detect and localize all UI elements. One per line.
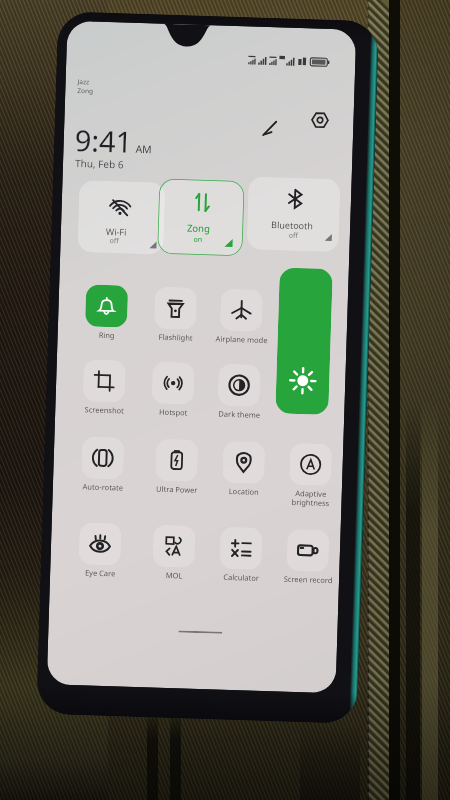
staticText: Eye Care [68, 567, 132, 579]
staticText: Zong [77, 86, 93, 95]
staticText: Hotspot [141, 406, 205, 418]
staticText: Dark theme [207, 408, 271, 420]
button[interactable]: Ultra Power [144, 438, 210, 506]
button[interactable]: MOL [142, 524, 208, 592]
button[interactable]: Airplane mode [209, 288, 275, 356]
staticText: 9:41 [74, 120, 133, 161]
button[interactable]: Auto-rotate [70, 436, 136, 504]
staticText: Location [212, 485, 276, 497]
button[interactable]: Bluetooth [246, 176, 341, 252]
button[interactable]: Calculator [209, 526, 275, 594]
staticText: Airplane mode [209, 333, 274, 345]
staticText: MOL [142, 569, 206, 581]
staticText: Screenshot [72, 404, 136, 416]
button[interactable]: Brightness [275, 267, 333, 415]
button[interactable]: Screen record [276, 528, 341, 596]
staticText: Adaptive brightness [278, 487, 342, 508]
button[interactable]: Wi-Fi [77, 180, 165, 255]
button[interactable]: Screenshot [72, 359, 138, 427]
button[interactable]: Dark theme [207, 363, 273, 431]
staticText: Zong [187, 221, 210, 235]
button[interactable]: Settings [305, 105, 334, 134]
button[interactable]: Eye Care [68, 522, 134, 590]
staticText: Calculator [209, 571, 273, 583]
staticText: Auto-rotate [71, 481, 135, 493]
button[interactable]: Flashlight [143, 286, 209, 354]
staticText: Screen record [276, 573, 339, 585]
button[interactable]: Zong [157, 179, 244, 256]
staticText: Thu, Feb 6 [75, 156, 124, 171]
staticText: Jazz [77, 77, 90, 86]
staticText: on [193, 235, 203, 245]
button[interactable]: Ring [74, 284, 140, 352]
staticText: Ultra Power [145, 483, 209, 495]
staticText: Ring [74, 329, 139, 341]
button[interactable]: Edit [256, 114, 285, 142]
button[interactable]: Hotspot [141, 361, 207, 429]
staticText: AM [135, 142, 153, 156]
staticText: off [109, 236, 120, 246]
staticText: off [289, 231, 299, 241]
staticText: Flashlight [143, 331, 208, 343]
button[interactable]: Location [211, 440, 277, 508]
button[interactable]: Adaptive brightness [278, 442, 343, 510]
staticText: Bluetooth [271, 218, 313, 231]
staticText: Wi-Fi [106, 225, 127, 238]
